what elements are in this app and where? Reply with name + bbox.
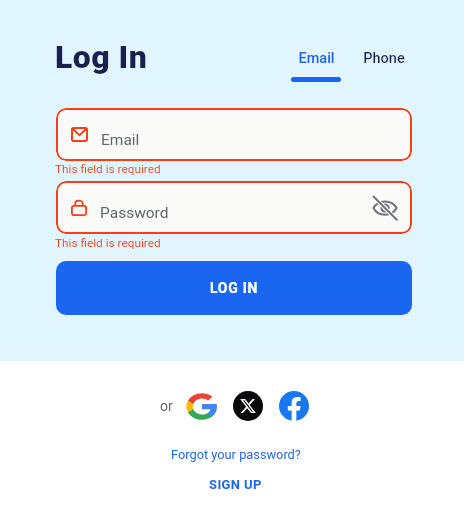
staticText: Forgot your password?	[171, 447, 301, 462]
staticText: This field is required	[55, 236, 161, 250]
staticText: Phone	[363, 50, 405, 67]
button[interactable]: LOG IN	[56, 261, 412, 315]
staticText: Email	[101, 131, 140, 149]
staticText: or	[160, 398, 173, 414]
button[interactable]: Sign in with X	[233, 391, 263, 421]
button[interactable]: Email	[56, 108, 412, 161]
button[interactable]: Phone	[359, 50, 409, 82]
staticText: LOG IN	[210, 280, 259, 296]
staticText: SIGN UP	[209, 477, 262, 492]
button[interactable]: Password	[56, 181, 412, 234]
button[interactable]: SIGN UP	[199, 473, 272, 496]
button[interactable]: Sign in with Facebook	[279, 391, 309, 421]
button[interactable]: Forgot your password?	[161, 443, 311, 466]
staticText: Log In	[55, 38, 148, 76]
button[interactable]: Sign in with Google	[185, 391, 219, 421]
staticText: Password	[100, 204, 169, 222]
button[interactable]: Show password	[372, 195, 398, 221]
staticText: Email	[298, 50, 335, 67]
button[interactable]: Email	[291, 50, 341, 82]
staticText: This field is required	[55, 162, 161, 176]
